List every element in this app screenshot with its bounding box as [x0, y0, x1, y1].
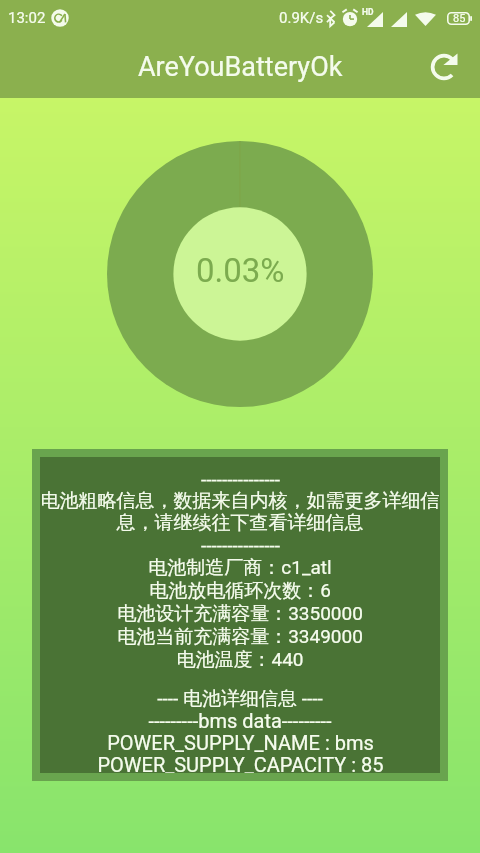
staticText: ---- 电池详细信息 ---- [157, 688, 323, 711]
staticText: 13:02 [8, 9, 46, 27]
staticText: AreYouBatteryOk [138, 51, 343, 83]
staticText: 0.9K/s [279, 9, 324, 27]
staticText: POWER_SUPPLY_NAME : bms [107, 733, 374, 755]
staticText: 85 [453, 12, 466, 25]
staticText: 电池制造厂商：c1_atl [148, 557, 332, 580]
staticText: --------------- [201, 469, 280, 491]
staticText: 电池设计充满容量：3350000 [117, 603, 363, 626]
staticText: --------------- [201, 535, 280, 557]
staticText: 电池当前充满容量：3349000 [117, 626, 363, 649]
staticText: HD [362, 7, 374, 17]
staticText: 电池放电循环次数：6 [149, 580, 331, 603]
staticText: 电池粗略信息，数据来自内核，如需更多详细信息，请继续往下查看详细信息 [40, 491, 440, 535]
button[interactable]: Refresh [423, 45, 467, 89]
staticText: 0.03% [196, 251, 285, 290]
staticText: POWER_SUPPLY_CAPACITY : 85 [97, 755, 384, 773]
staticText: ---------bms data--------- [148, 711, 332, 733]
staticText: 电池温度：440 [176, 649, 304, 672]
